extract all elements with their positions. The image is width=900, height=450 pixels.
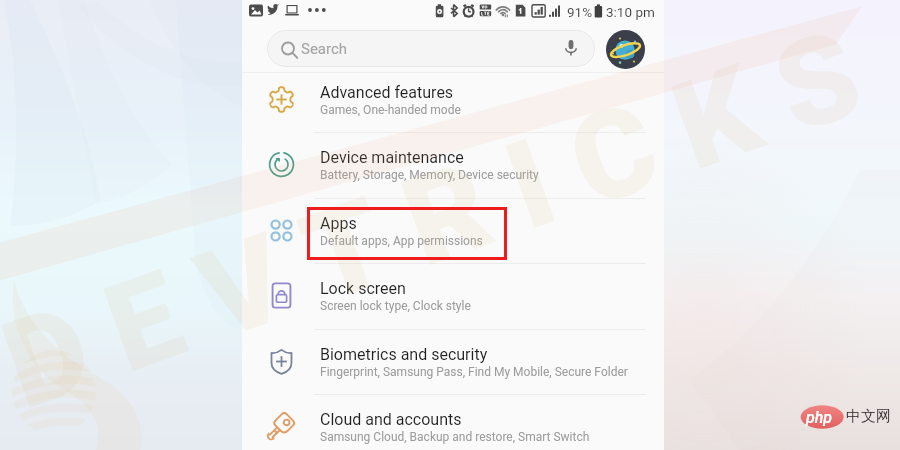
button[interactable]: Voice search [561, 38, 581, 58]
staticText: Lock screen [320, 279, 406, 298]
button[interactable]: Cloud and accounts [242, 394, 664, 450]
button[interactable]: Device maintenance [242, 132, 664, 197]
staticText: Search [301, 40, 348, 58]
staticText: 91% [567, 4, 593, 20]
staticText: Games, One-handed mode [320, 103, 461, 117]
staticText: Biometrics and security [320, 345, 488, 364]
button[interactable]: Account [606, 30, 645, 69]
staticText: Advanced features [320, 83, 454, 102]
staticText: Screen lock type, Clock style [320, 299, 471, 313]
staticText: Default apps, App permissions [320, 234, 483, 248]
button[interactable]: Search [267, 30, 595, 67]
staticText: Cloud and accounts [320, 410, 462, 429]
button[interactable]: Apps [242, 198, 664, 263]
staticText: Samsung Cloud, Backup and restore, Smart… [320, 430, 590, 444]
staticText: Fingerprint, Samsung Pass, Find My Mobil… [320, 365, 628, 379]
staticText: Apps [320, 214, 357, 233]
button[interactable]: Biometrics and security [242, 329, 664, 394]
staticText: DEVTRICKS [0, 1, 882, 438]
button[interactable]: Lock screen [242, 263, 664, 328]
staticText: 3:10 pm [606, 4, 655, 20]
staticText: 中文网 [846, 407, 891, 426]
staticText: Device maintenance [320, 148, 464, 167]
staticText: Battery, Storage, Memory, Device securit… [320, 168, 539, 182]
button[interactable]: Advanced features [242, 67, 664, 132]
staticText: php [806, 408, 833, 427]
